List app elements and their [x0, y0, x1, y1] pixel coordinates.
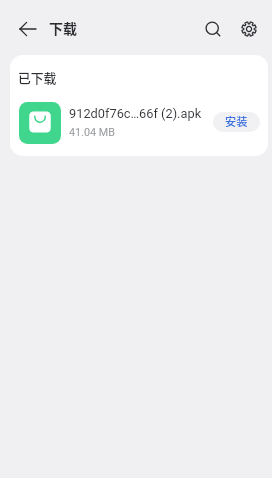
- staticText: 41.04 MB: [69, 126, 115, 139]
- staticText: 安装: [225, 113, 248, 129]
- staticText: 912d0f76c…66f (2).apk: [69, 106, 202, 121]
- staticText: 已下载: [18, 68, 57, 87]
- button[interactable]: 912d0f76c…66f (2).apk: [10, 97, 268, 147]
- button[interactable]: Settings: [234, 14, 263, 43]
- button[interactable]: Search: [198, 14, 227, 43]
- staticText: 下载: [49, 18, 77, 38]
- button[interactable]: Back: [13, 14, 42, 43]
- button[interactable]: 安装: [213, 112, 260, 132]
